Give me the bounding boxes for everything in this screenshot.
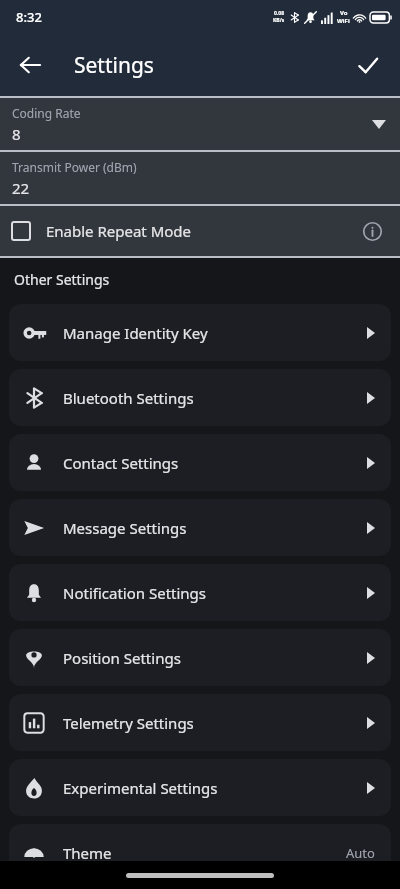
staticText: Coding Rate [12,105,81,121]
button[interactable]: Experimental Settings [9,759,391,816]
staticText: 8:32 [16,8,42,26]
staticText: Bluetooth Settings [63,388,367,408]
staticText: Message Settings [63,518,367,538]
staticText: Vo [340,9,348,17]
staticText: Contact Settings [63,453,367,473]
staticText: Settings [74,51,154,80]
staticText: Auto [346,844,375,862]
staticText: Position Settings [63,648,367,668]
button[interactable]: Coding Rate [0,98,400,150]
staticText: KB/s [273,17,285,24]
staticText: Enable Repeat Mode [46,221,192,241]
button[interactable]: Contact Settings [9,434,391,491]
button[interactable]: Transmit Power (dBm) [0,152,400,204]
staticText: Experimental Settings [63,778,367,798]
button[interactable]: Back [6,41,54,89]
staticText: 22 [12,178,30,198]
staticText: Transmit Power (dBm) [12,159,137,175]
button[interactable]: Enable Repeat Mode [12,206,192,256]
button[interactable]: Message Settings [9,499,391,556]
button[interactable]: Notification Settings [9,564,391,621]
staticText: 0.08 [274,10,284,17]
staticText: WiFi [337,17,350,25]
staticText: Notification Settings [63,583,367,603]
staticText: Other Settings [14,270,110,289]
staticText: 8 [12,124,21,144]
button[interactable]: Save [344,41,392,89]
button[interactable]: Info about repeat mode [352,211,392,251]
button[interactable]: Telemetry Settings [9,694,391,751]
button[interactable]: Manage Identity Key [9,304,391,361]
button[interactable]: Position Settings [9,629,391,686]
staticText: Theme [63,843,346,863]
button[interactable]: Bluetooth Settings [9,369,391,426]
staticText: Telemetry Settings [63,713,367,733]
button[interactable]: Theme [9,824,391,881]
staticText: Manage Identity Key [63,323,367,343]
